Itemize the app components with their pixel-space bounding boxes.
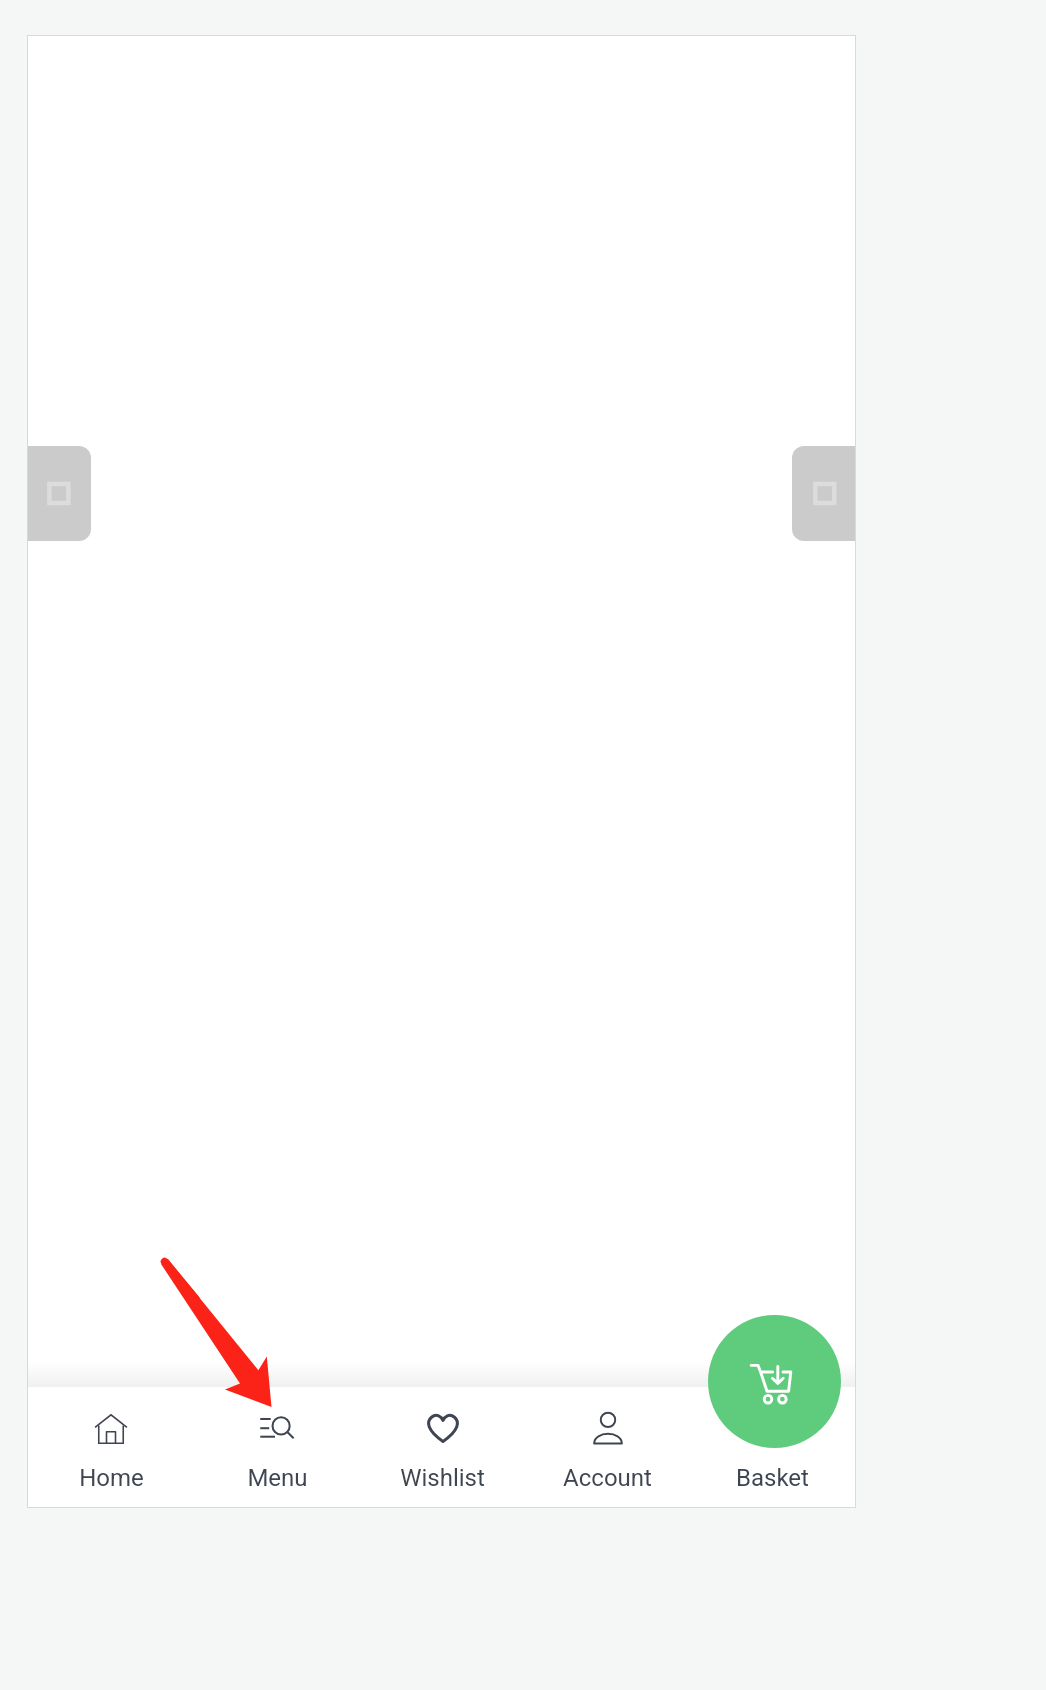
button[interactable]: Basket <box>708 1315 841 1448</box>
button[interactable]: Product image <box>792 446 855 541</box>
button[interactable]: Menu <box>194 1387 360 1507</box>
button[interactable]: Product image <box>28 446 91 541</box>
other: Arrow pointing at Menu <box>0 0 1046 1690</box>
staticText: Wishlist <box>400 1464 485 1492</box>
button[interactable]: Basket <box>690 1387 855 1507</box>
button[interactable]: Account <box>525 1387 690 1507</box>
staticText: Basket <box>736 1464 809 1492</box>
button[interactable]: Wishlist <box>360 1387 525 1507</box>
button[interactable]: Home <box>28 1387 194 1507</box>
staticText: Account <box>563 1464 652 1492</box>
staticText: Menu <box>247 1464 308 1492</box>
staticText: Home <box>79 1464 144 1492</box>
